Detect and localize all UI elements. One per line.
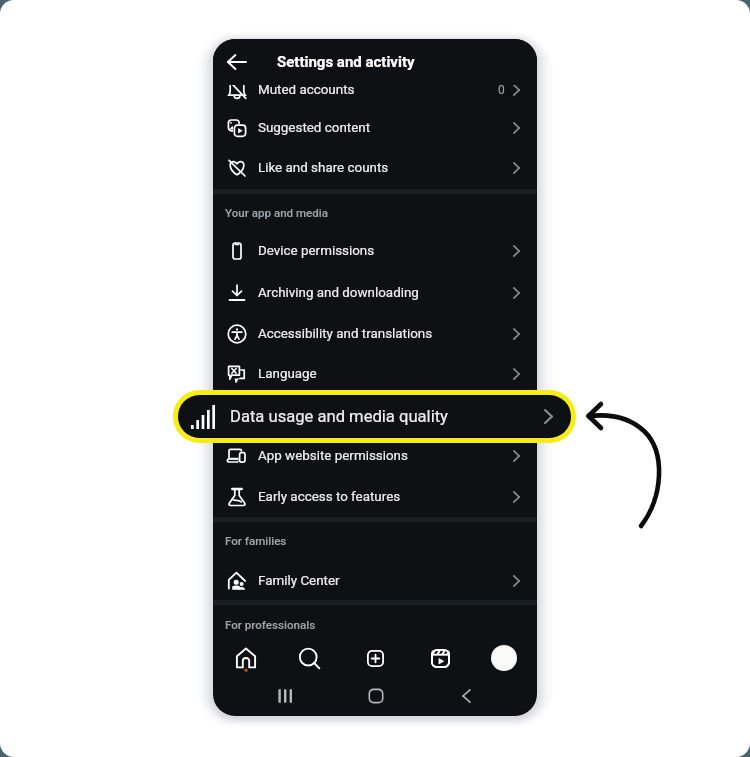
staticText: Early access to features (258, 489, 401, 505)
staticText: Like and share counts (258, 160, 389, 176)
staticText: Accessibility and translations (258, 326, 433, 342)
button[interactable]: Home (220, 632, 272, 684)
staticText: Family Center (258, 573, 340, 589)
staticText: Your app and media (225, 206, 329, 220)
staticText: 0 (498, 83, 505, 97)
button[interactable]: Recent apps (260, 679, 308, 713)
staticText: Data usage and media quality (258, 408, 434, 424)
button[interactable]: Suggested content (213, 108, 537, 148)
staticText: For professionals (225, 618, 316, 632)
staticText: App website permissions (258, 448, 408, 464)
button[interactable]: App website permissions (213, 436, 537, 476)
button[interactable]: Data usage and media quality (179, 396, 570, 437)
button[interactable]: Accessibility and translations (213, 314, 537, 354)
button[interactable]: Back (443, 679, 491, 713)
button[interactable]: Home (352, 679, 400, 713)
button[interactable]: Family Center (213, 561, 537, 601)
button[interactable]: Language (213, 354, 537, 394)
staticText: Language (258, 366, 317, 382)
staticText: Suggested content (258, 120, 371, 136)
staticText: Settings and activity (277, 53, 415, 71)
button[interactable]: Create (349, 632, 401, 684)
button[interactable]: Muted accounts (213, 70, 537, 110)
button[interactable]: Back (214, 39, 260, 85)
staticText: Data usage and media quality (230, 407, 448, 426)
staticText: Muted accounts (258, 82, 355, 98)
staticText: Device permissions (258, 243, 375, 259)
button[interactable]: Device permissions (213, 231, 537, 271)
button[interactable]: Search (283, 632, 335, 684)
button[interactable]: Profile (478, 632, 530, 684)
button[interactable]: Reels (414, 632, 466, 684)
button[interactable]: Archiving and downloading (213, 273, 537, 313)
button[interactable]: Data usage and media quality (213, 396, 537, 436)
button[interactable]: Like and share counts (213, 148, 537, 188)
staticText: Archiving and downloading (258, 285, 419, 301)
button[interactable]: Early access to features (213, 477, 537, 517)
staticText: For families (225, 534, 287, 548)
